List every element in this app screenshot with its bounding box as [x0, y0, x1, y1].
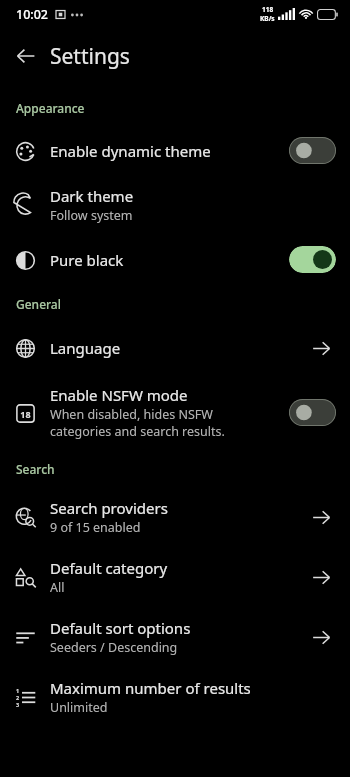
- button[interactable]: Default sort options: [0, 607, 350, 667]
- staticText: Seeders / Descending: [50, 639, 178, 656]
- staticText: Maximum number of results: [50, 678, 251, 698]
- button[interactable]: Default category: [0, 547, 350, 607]
- button[interactable]: Open: [306, 622, 336, 652]
- button[interactable]: 1: [0, 667, 350, 727]
- button[interactable]: 18: [0, 374, 350, 451]
- button[interactable]: Open: [306, 502, 336, 532]
- button[interactable]: Off: [289, 399, 336, 426]
- button[interactable]: Pure black: [0, 235, 350, 284]
- staticText: Unlimited: [50, 699, 108, 716]
- staticText: 3: [16, 701, 20, 708]
- staticText: All: [50, 579, 65, 596]
- button[interactable]: Off: [289, 137, 336, 164]
- staticText: 9 of 15 enabled: [50, 519, 141, 536]
- staticText: Search providers: [50, 498, 168, 518]
- staticText: 18: [20, 408, 31, 420]
- staticText: When disabled, hides NSFW categories and…: [50, 406, 225, 440]
- button[interactable]: Open: [306, 333, 336, 363]
- staticText: Enable NSFW mode: [50, 385, 188, 405]
- button[interactable]: Language: [0, 322, 350, 374]
- button[interactable]: Enable dynamic theme: [0, 126, 350, 175]
- staticText: Appearance: [16, 100, 85, 116]
- staticText: Default category: [50, 558, 168, 578]
- staticText: KB/s: [260, 14, 275, 23]
- staticText: General: [16, 296, 61, 312]
- staticText: 1: [16, 687, 20, 694]
- button[interactable]: On: [289, 246, 336, 273]
- staticText: Follow system: [50, 207, 133, 224]
- staticText: 10:02: [16, 6, 49, 23]
- staticText: Pure black: [50, 250, 124, 270]
- button[interactable]: Back: [6, 36, 46, 76]
- staticText: Search: [16, 461, 55, 477]
- staticText: Settings: [50, 42, 130, 71]
- staticText: Enable dynamic theme: [50, 141, 211, 161]
- staticText: Language: [50, 338, 121, 358]
- staticText: Default sort options: [50, 618, 191, 638]
- button[interactable]: Dark theme: [0, 175, 350, 235]
- button[interactable]: Search providers: [0, 487, 350, 547]
- button[interactable]: Open: [306, 562, 336, 592]
- staticText: 2: [16, 694, 20, 701]
- staticText: 118: [262, 5, 274, 14]
- staticText: Dark theme: [50, 186, 134, 206]
